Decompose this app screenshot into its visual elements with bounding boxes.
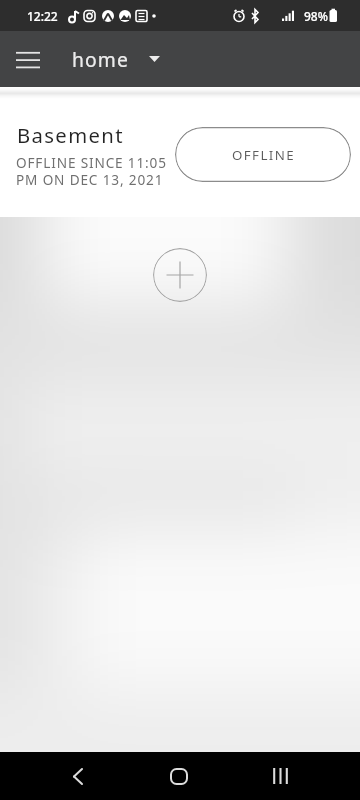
button[interactable]: Back	[54, 752, 102, 800]
staticText: home	[72, 46, 129, 72]
staticText: 98%	[304, 8, 328, 24]
button[interactable]: OFFLINE	[175, 127, 351, 182]
button[interactable]: Open navigation menu	[0, 31, 56, 87]
staticText: 12:22	[27, 8, 58, 24]
button[interactable]: Add device	[153, 248, 207, 302]
staticText: OFFLINE SINCE 11:05 PM ON DEC 13, 2021	[16, 153, 167, 189]
staticText: Basement	[17, 121, 124, 149]
button[interactable]: home	[72, 31, 160, 87]
button[interactable]: Home	[155, 752, 203, 800]
staticText: OFFLINE	[232, 146, 295, 164]
button[interactable]: Recent apps	[256, 752, 304, 800]
